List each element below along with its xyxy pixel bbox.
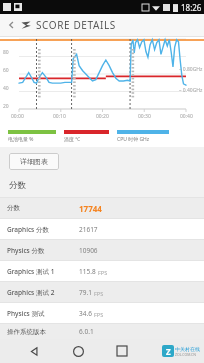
staticText: FPS [98, 269, 108, 276]
staticText: 电池电量 % [8, 136, 34, 143]
staticText: 操作系统版本 [7, 328, 46, 336]
staticText: 21617 [79, 225, 98, 234]
staticText: Physics 分数 [7, 246, 45, 255]
staticText: 34.6 [79, 309, 92, 318]
staticText: 17744 [79, 203, 102, 214]
button[interactable]: Physics 分数 [0, 240, 204, 260]
staticText: 60 [3, 67, 9, 74]
button[interactable]: 操作系统版本 [0, 324, 204, 339]
staticText: Graphics 分数 [7, 225, 49, 234]
staticText: SCORE DETAILS [36, 18, 116, 32]
staticText: FPS [94, 311, 104, 318]
button[interactable]: Graphics 分数 [0, 219, 204, 239]
staticText: 00:10 [53, 113, 66, 120]
staticText: 40 [3, 85, 9, 92]
staticText: 00:00 [11, 113, 24, 120]
button[interactable]: Home [68, 341, 88, 361]
staticText: 79.1 [79, 288, 92, 297]
staticText: 中关村在线 [175, 346, 200, 352]
button[interactable]: 详细图表 [9, 153, 59, 170]
staticText: Z [166, 346, 171, 357]
button[interactable]: Back [4, 17, 20, 33]
staticText: Graphics 测试 1 [7, 267, 55, 276]
button[interactable]: Graphics 测试 1 [0, 261, 204, 281]
button[interactable]: Graphics 测试 2 [0, 282, 204, 302]
staticText: Physics 测试 [7, 309, 45, 318]
staticText: 00:30 [138, 113, 151, 120]
staticText: 00:20 [96, 113, 109, 120]
staticText: 10906 [79, 246, 98, 255]
staticText: 115.8 [79, 267, 96, 276]
button[interactable]: Recents [112, 341, 132, 361]
staticText: – 0.40GHz [179, 87, 203, 94]
staticText: 6.0.1 [79, 327, 94, 336]
staticText: 18:26 [181, 2, 202, 13]
staticText: 20 [3, 103, 9, 110]
staticText: 分数 [9, 180, 26, 191]
staticText: 80 [3, 49, 9, 56]
staticText: Graphics 测试 2 [7, 288, 55, 297]
staticText: FPS [94, 290, 104, 297]
staticText: – 0.80GHz [179, 66, 203, 73]
button[interactable]: Back [24, 341, 44, 361]
staticText: CPU 时钟 GHz [117, 136, 150, 143]
staticText: 温度 ℃ [64, 136, 81, 143]
staticText: 详细图表 [20, 157, 48, 166]
staticText: 00:40 [180, 113, 193, 120]
button[interactable]: Physics 测试 [0, 303, 204, 323]
staticText: 分数 [7, 204, 20, 212]
staticText: ZOL.COM.CN [175, 352, 196, 357]
button[interactable]: 分数 [0, 198, 204, 218]
